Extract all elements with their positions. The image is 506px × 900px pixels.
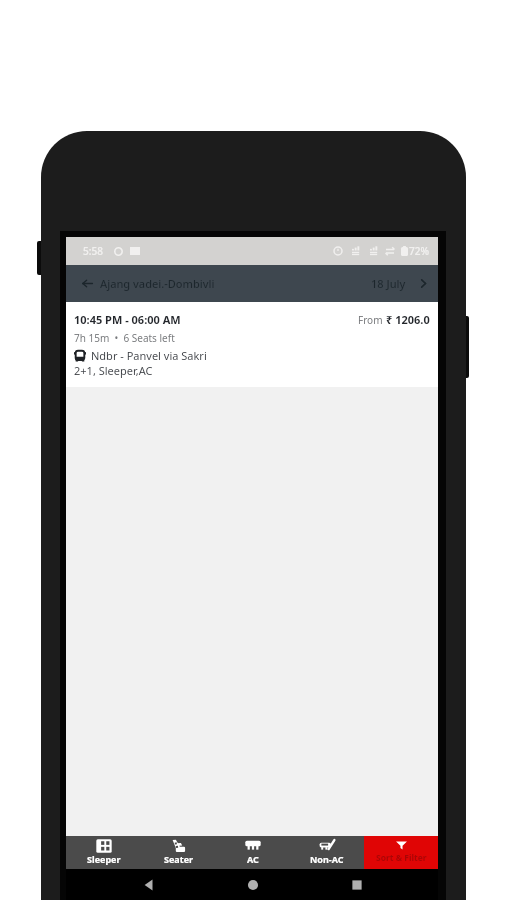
staticText: Seater	[164, 853, 194, 865]
staticText: 10:45 PM - 06:00 AM	[74, 312, 181, 327]
button[interactable]: Home	[242, 874, 264, 896]
button[interactable]: Seater	[141, 836, 216, 869]
staticText: 2+1, Sleeper,AC	[74, 363, 153, 378]
staticText: Sort & Filter	[376, 852, 427, 864]
staticText: Ndbr - Panvel via Sakri	[91, 348, 207, 363]
button[interactable]: Sort & Filter	[364, 836, 438, 869]
button[interactable]: AC	[216, 836, 290, 869]
staticText: From	[358, 313, 386, 327]
button[interactable]: Back	[138, 874, 160, 896]
staticText: 5:58	[83, 244, 103, 258]
staticText: 18 July	[371, 276, 406, 291]
staticText: Sleeper	[87, 853, 121, 865]
button[interactable]: Sleeper	[66, 836, 141, 869]
button[interactable]: Navigate up	[66, 265, 100, 302]
button[interactable]: 18 July	[371, 265, 438, 302]
staticText: 72%	[409, 244, 429, 258]
staticText: 7h 15m • 6 Seats left	[74, 331, 175, 345]
button[interactable]: Ajang vadei.-Dombivli	[100, 265, 371, 302]
staticText: Non-AC	[310, 853, 344, 865]
staticText: ₹ 1206.0	[386, 312, 430, 327]
staticText: AC	[247, 853, 259, 865]
button[interactable]: Non-AC	[290, 836, 364, 869]
staticText: Ajang vadei.-Dombivli	[100, 276, 215, 291]
button[interactable]: 10:45 PM - 06:00 AM	[66, 302, 438, 387]
button[interactable]: Recent apps	[346, 874, 368, 896]
